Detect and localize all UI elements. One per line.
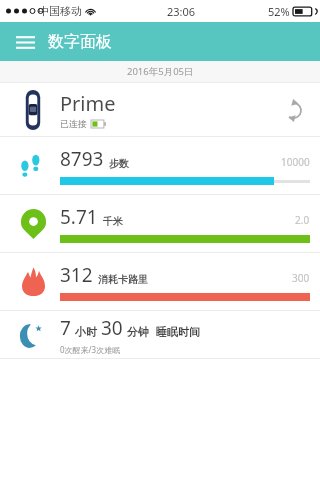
staticText: 52% xyxy=(268,4,290,19)
staticText: 千米 xyxy=(103,215,123,228)
button[interactable]: 8793 xyxy=(0,137,320,194)
staticText: 30 xyxy=(101,315,123,341)
staticText: 0次醒来/3次难眠 xyxy=(60,344,121,355)
button[interactable]: 5.71 xyxy=(0,195,320,252)
staticText: 小时 xyxy=(75,325,97,339)
staticText: 7 xyxy=(60,315,71,341)
staticText: 23:06 xyxy=(167,4,196,19)
staticText: 数字面板 xyxy=(48,32,112,52)
staticText: 睡眠时间 xyxy=(156,325,200,339)
staticText: 5.71 xyxy=(60,204,98,230)
staticText: 分钟 xyxy=(127,325,149,339)
staticText: 中国移动 xyxy=(38,4,82,18)
staticText: 2016年5月05日 xyxy=(127,65,194,78)
button[interactable]: Sync xyxy=(276,93,310,127)
staticText: 8793 xyxy=(60,146,104,172)
staticText: Prime xyxy=(60,90,116,117)
button[interactable]: Prime xyxy=(0,83,320,136)
button[interactable]: 7 xyxy=(0,311,320,358)
staticText: 2.0 xyxy=(295,213,310,227)
staticText: 消耗卡路里 xyxy=(98,273,148,286)
button[interactable]: Menu xyxy=(10,27,40,57)
staticText: 已连接 xyxy=(60,118,87,129)
staticText: 步数 xyxy=(109,157,129,170)
staticText: 10000 xyxy=(281,155,310,169)
button[interactable]: 312 xyxy=(0,253,320,310)
staticText: 312 xyxy=(60,262,93,288)
staticText: 300 xyxy=(292,271,310,285)
